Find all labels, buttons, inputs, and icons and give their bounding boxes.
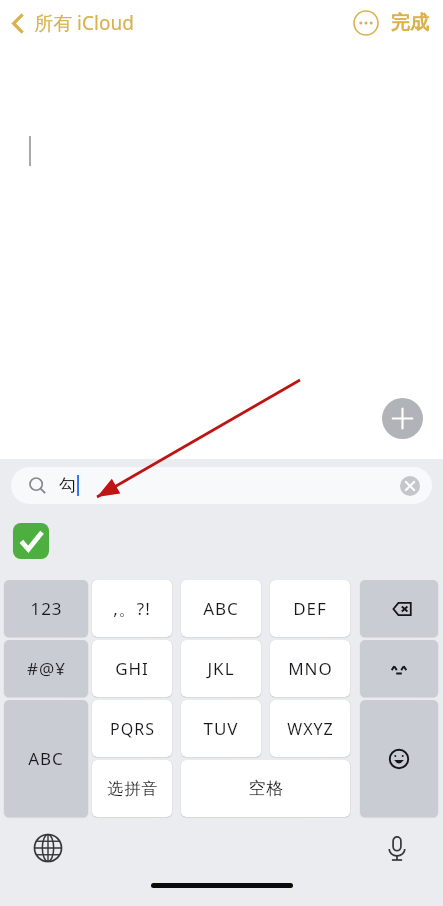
staticText: 所有 iCloud	[34, 10, 134, 36]
button[interactable]: DEF	[270, 580, 350, 637]
staticText: ABC	[203, 597, 239, 620]
button[interactable]: Add	[382, 398, 423, 439]
button[interactable]: ABC	[4, 700, 88, 817]
button[interactable]: 空格	[181, 760, 350, 817]
staticText: ABC	[28, 747, 64, 770]
button[interactable]: PQRS	[92, 700, 172, 757]
button[interactable]: ,。?!	[92, 580, 172, 637]
staticText: 空格	[248, 778, 284, 799]
button[interactable]: Switch keyboard	[26, 826, 70, 870]
button[interactable]: 完成	[383, 5, 443, 41]
button[interactable]: Emoji	[360, 700, 438, 817]
staticText: ,。?!	[113, 597, 151, 620]
button[interactable]: 选拼音	[92, 760, 172, 817]
staticText: 完成	[391, 11, 429, 35]
staticText: MNO	[288, 657, 333, 680]
button[interactable]: #@¥	[4, 640, 88, 697]
button[interactable]: More options	[349, 6, 383, 40]
staticText: 选拼音	[107, 779, 158, 799]
staticText: DEF	[293, 597, 327, 620]
button[interactable]: Kaomoji	[360, 640, 438, 697]
button[interactable]: MNO	[270, 640, 350, 697]
button[interactable]: Backspace	[360, 580, 438, 637]
staticText: TUV	[203, 717, 239, 740]
button[interactable]: Voice input	[375, 826, 419, 870]
staticText: #@¥	[27, 657, 66, 680]
button[interactable]: 勾	[11, 467, 432, 504]
staticText: 123	[30, 597, 63, 620]
button[interactable]: JKL	[181, 640, 261, 697]
button[interactable]: Clear text	[400, 476, 420, 496]
staticText: JKL	[207, 657, 235, 680]
button[interactable]: 所有 iCloud	[0, 6, 142, 40]
button[interactable]: TUV	[181, 700, 261, 757]
staticText: GHI	[115, 657, 149, 680]
button[interactable]: WXYZ	[270, 700, 350, 757]
button[interactable]: 123	[4, 580, 88, 637]
button[interactable]: GHI	[92, 640, 172, 697]
staticText: WXYZ	[287, 718, 334, 740]
button[interactable]: Check mark emoji	[9, 519, 53, 563]
button[interactable]: ABC	[181, 580, 261, 637]
staticText: PQRS	[110, 718, 155, 740]
staticText: 勾	[59, 475, 76, 496]
